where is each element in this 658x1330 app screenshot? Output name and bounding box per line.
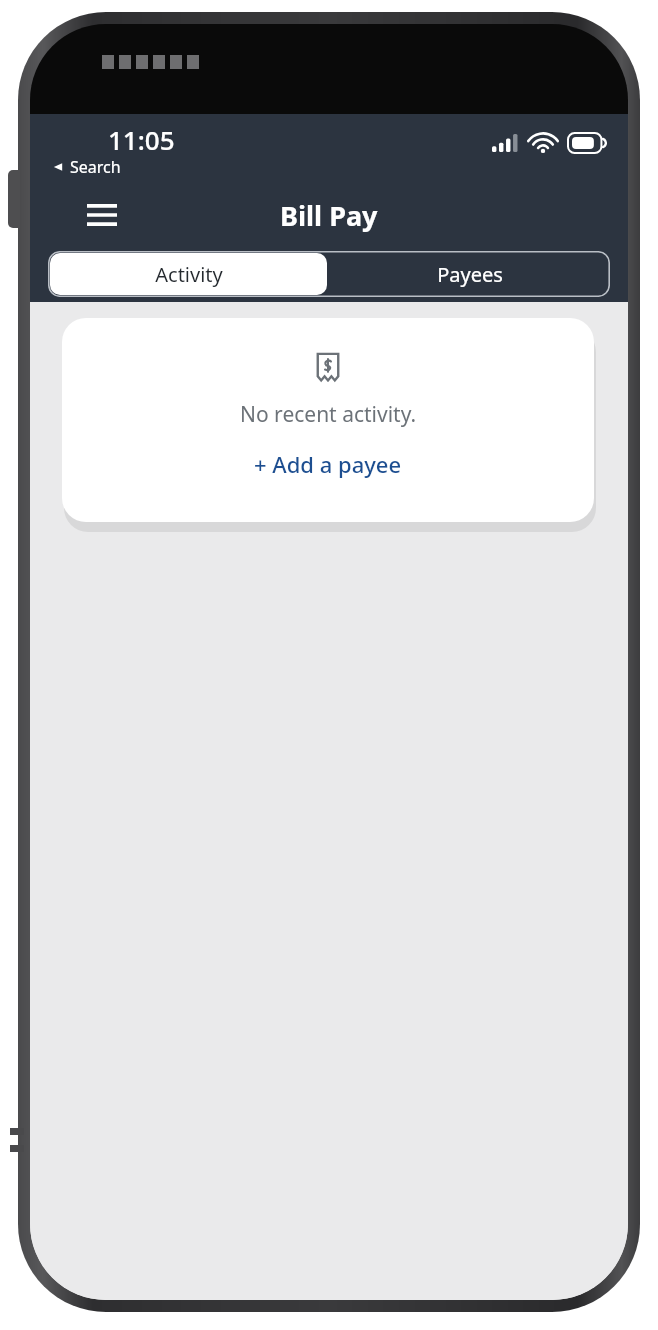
button[interactable]: Activity (50, 253, 327, 295)
staticText: Payees (437, 261, 503, 288)
staticText: Activity (155, 261, 223, 288)
staticText: Search (70, 156, 121, 178)
staticText: Bill Pay (280, 197, 378, 234)
staticText: 11:05 (108, 122, 175, 157)
button[interactable]: + Add a payee (246, 445, 410, 483)
button[interactable]: Payees (329, 251, 610, 297)
staticText: No recent activity. (240, 400, 417, 429)
staticText: + Add a payee (254, 449, 402, 479)
button[interactable]: Menu (74, 190, 130, 240)
